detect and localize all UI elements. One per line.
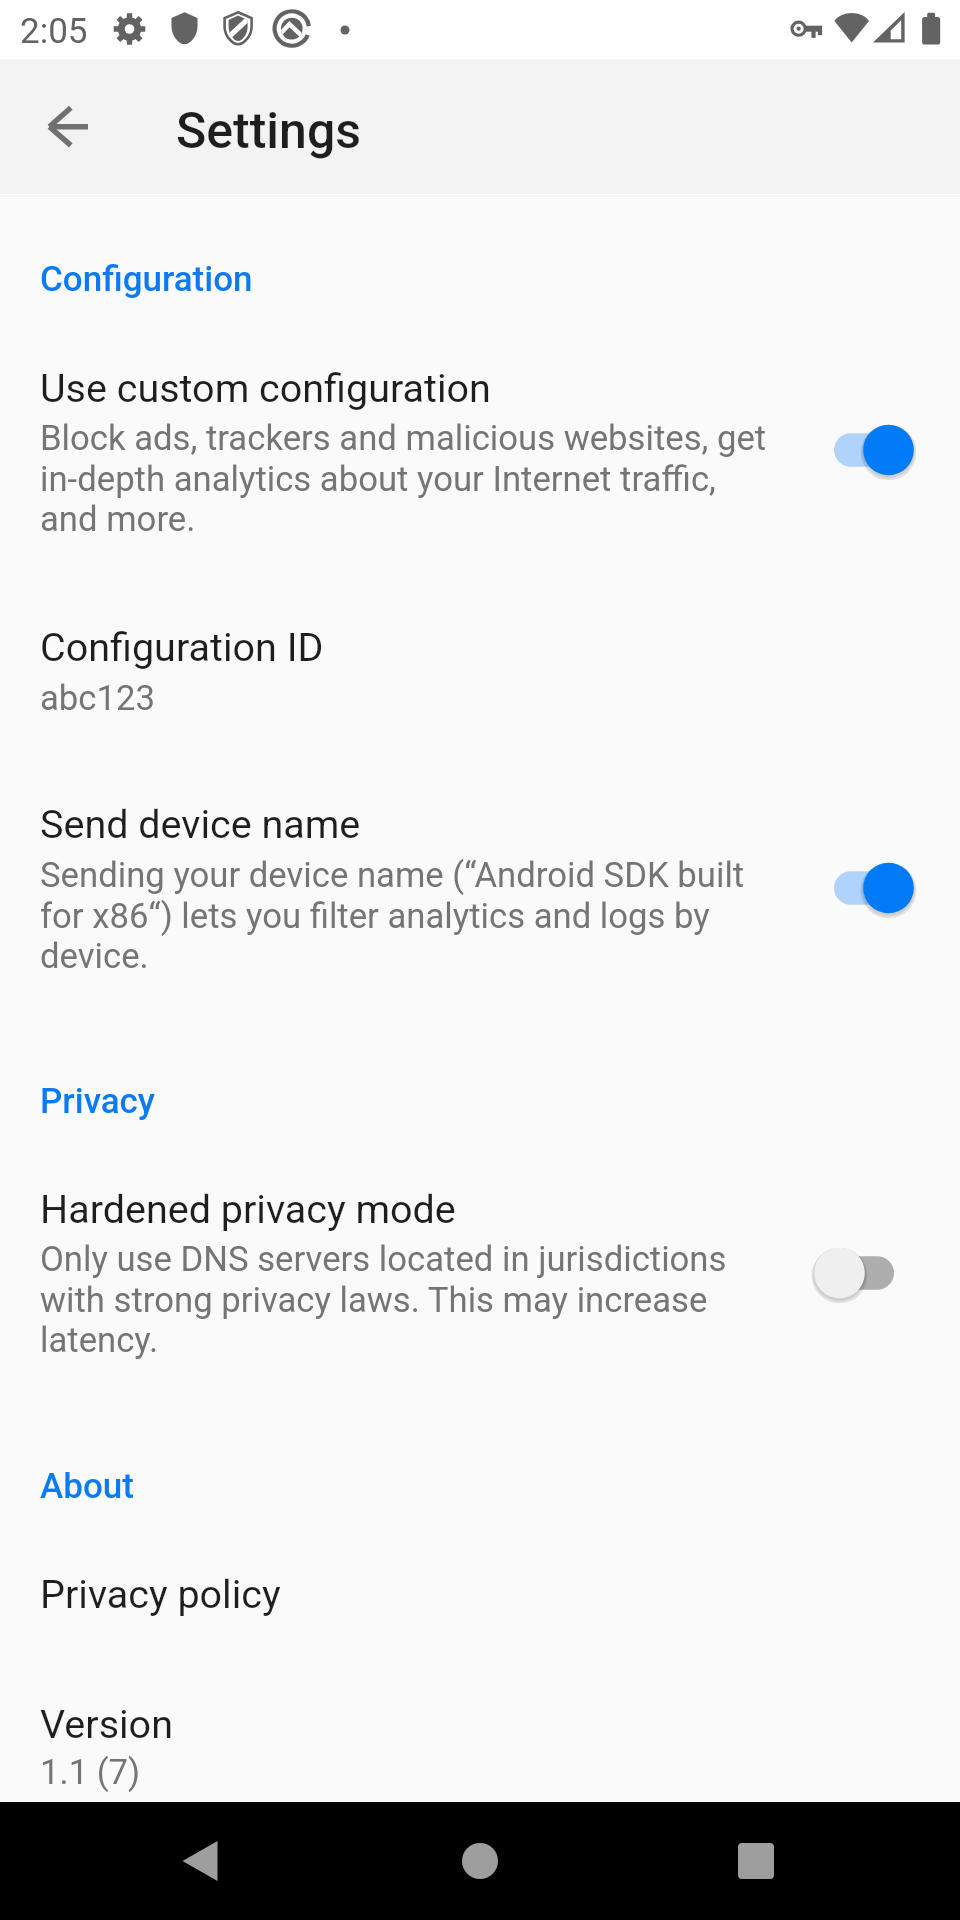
staticText: Hardened privacy mode <box>40 1186 456 1232</box>
staticText: Send device name <box>40 801 361 847</box>
staticText: Privacy <box>40 1081 156 1122</box>
staticText: 2:05 <box>20 11 88 52</box>
button[interactable]: Privacy policy <box>0 1553 960 1663</box>
staticText: Version <box>40 1701 173 1747</box>
staticText: Configuration <box>40 259 253 300</box>
button[interactable]: Navigate up <box>36 95 100 159</box>
button[interactable]: Version <box>0 1683 960 1802</box>
button[interactable]: Send device name <box>0 783 960 993</box>
staticText: Sending your device name (“Android SDK b… <box>40 855 780 976</box>
staticText: About <box>40 1466 134 1507</box>
staticText: Privacy policy <box>40 1571 281 1617</box>
staticText: Block ads, trackers and malicious websit… <box>40 418 780 539</box>
button[interactable]: Off <box>790 1225 940 1321</box>
button[interactable]: Hardened privacy mode <box>0 1168 960 1378</box>
button[interactable]: Recent apps <box>696 1802 816 1920</box>
button[interactable]: Use custom configuration <box>0 346 960 556</box>
button[interactable]: On <box>790 402 940 498</box>
staticText: Only use DNS servers located in jurisdic… <box>40 1239 780 1360</box>
staticText: abc123 <box>40 678 780 719</box>
button[interactable]: On <box>790 840 940 936</box>
button[interactable]: Configuration ID <box>0 606 960 736</box>
staticText: 1.1 (7) <box>40 1752 780 1793</box>
staticText: Settings <box>176 102 362 161</box>
button[interactable]: Home <box>420 1802 540 1920</box>
staticText: Configuration ID <box>40 624 324 670</box>
staticText: Use custom configuration <box>40 365 491 411</box>
button[interactable]: Back <box>140 1802 260 1920</box>
